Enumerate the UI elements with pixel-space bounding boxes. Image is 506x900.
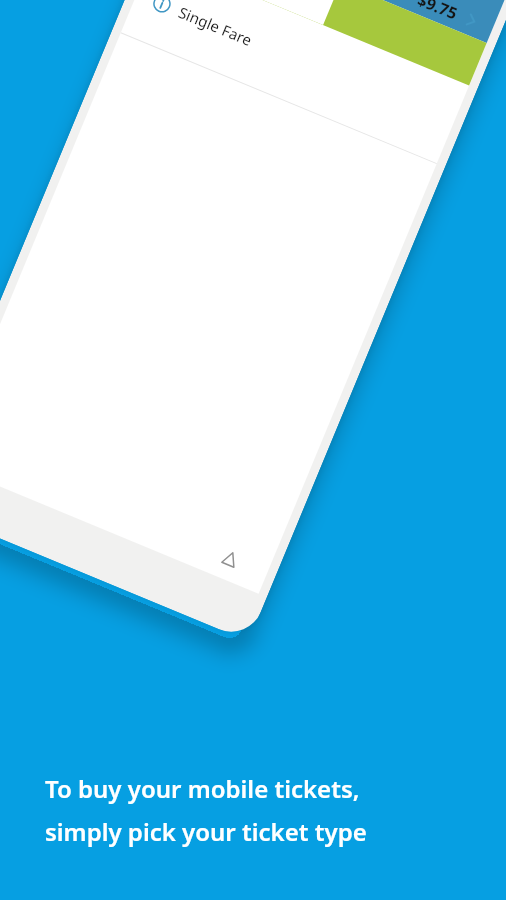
staticText: simply pick your ticket type [45, 815, 367, 848]
staticText: To buy your mobile tickets, [45, 772, 360, 805]
button[interactable]: Single Fare [121, 0, 469, 163]
button[interactable]: Multiple [368, 0, 434, 1]
staticText: Single Fare [176, 2, 255, 50]
button[interactable]: Single [194, 0, 357, 25]
button[interactable]: $9.75 [414, 0, 482, 33]
button[interactable]: Back [212, 540, 248, 576]
staticText: $9.75 [414, 0, 461, 25]
